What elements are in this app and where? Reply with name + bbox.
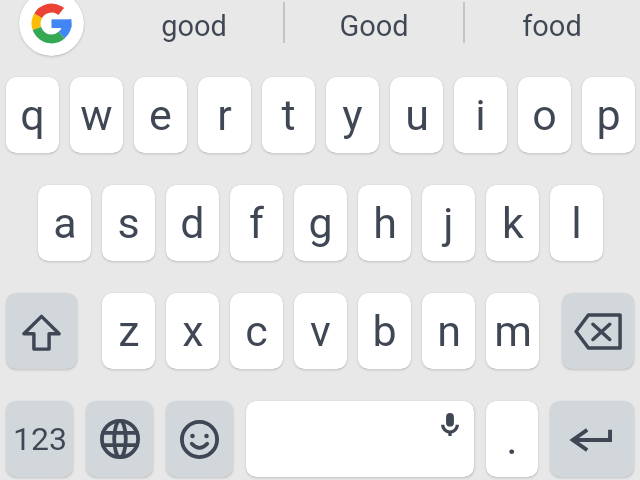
staticText: Good — [339, 9, 409, 43]
button[interactable]: q — [6, 77, 59, 153]
staticText: 123 — [13, 420, 67, 458]
button[interactable]: m — [486, 293, 539, 369]
staticText: i — [475, 90, 486, 140]
button[interactable]: d — [166, 185, 219, 261]
button[interactable]: g — [294, 185, 347, 261]
staticText: s — [117, 198, 140, 248]
button[interactable]: i — [454, 77, 507, 153]
button[interactable]: x — [166, 293, 219, 369]
staticText: h — [373, 198, 397, 248]
staticText: e — [149, 90, 172, 140]
staticText: c — [245, 306, 268, 356]
button[interactable]: t — [262, 77, 315, 153]
staticText: j — [443, 198, 454, 248]
button[interactable]: Emoji — [166, 401, 233, 477]
button[interactable]: u — [390, 77, 443, 153]
button[interactable]: Switch language — [86, 401, 153, 477]
staticText: d — [180, 198, 205, 248]
staticText: q — [20, 90, 45, 140]
button[interactable]: Backspace — [562, 293, 634, 369]
button[interactable]: y — [326, 77, 379, 153]
staticText: y — [342, 90, 363, 140]
button[interactable]: Google Assistant — [19, 0, 84, 56]
button[interactable]: . — [486, 401, 538, 477]
button[interactable]: Numbers — [6, 401, 73, 477]
button[interactable]: k — [486, 185, 539, 261]
button[interactable]: good — [104, 3, 284, 49]
staticText: v — [310, 306, 331, 356]
button[interactable]: f — [230, 185, 283, 261]
staticText: r — [217, 90, 232, 140]
button[interactable]: w — [70, 77, 123, 153]
button[interactable]: Space — [246, 401, 474, 477]
staticText: w — [80, 90, 113, 140]
staticText: u — [405, 90, 429, 140]
button[interactable]: Shift — [6, 293, 77, 369]
staticText: t — [281, 90, 296, 140]
button[interactable]: c — [230, 293, 283, 369]
button[interactable]: j — [422, 185, 475, 261]
button[interactable]: a — [38, 185, 91, 261]
button[interactable]: s — [102, 185, 155, 261]
button[interactable]: p — [582, 77, 635, 153]
button[interactable]: e — [134, 77, 187, 153]
staticText: a — [53, 198, 77, 248]
staticText: f — [249, 198, 264, 248]
staticText: . — [506, 414, 518, 464]
button[interactable]: r — [198, 77, 251, 153]
staticText: p — [596, 90, 621, 140]
staticText: k — [502, 198, 524, 248]
button[interactable]: l — [550, 185, 603, 261]
button[interactable]: Good — [284, 3, 464, 49]
staticText: b — [372, 306, 397, 356]
button[interactable]: Enter — [550, 401, 634, 477]
staticText: o — [532, 90, 557, 140]
button[interactable]: o — [518, 77, 571, 153]
staticText: n — [437, 306, 461, 356]
staticText: x — [182, 306, 204, 356]
staticText: l — [571, 198, 582, 248]
staticText: m — [494, 306, 532, 356]
staticText: g — [308, 198, 333, 248]
button[interactable]: z — [102, 293, 155, 369]
staticText: z — [118, 306, 140, 356]
button[interactable]: food — [464, 3, 640, 49]
button[interactable]: n — [422, 293, 475, 369]
staticText: good — [161, 9, 227, 43]
button[interactable]: v — [294, 293, 347, 369]
staticText: food — [522, 9, 582, 43]
button[interactable]: h — [358, 185, 411, 261]
button[interactable]: b — [358, 293, 411, 369]
